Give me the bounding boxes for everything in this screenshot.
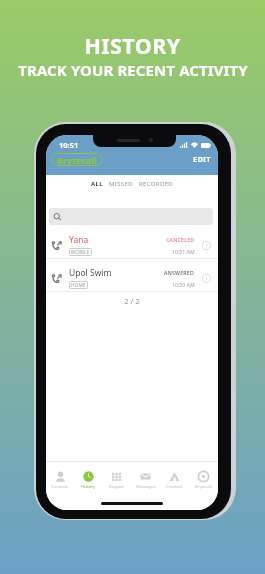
staticText: 10:50 AM <box>172 281 195 288</box>
staticText: Keypad <box>109 484 124 490</box>
staticText: ANSWERED <box>164 269 195 276</box>
staticText: Crockett <box>166 484 183 490</box>
staticText: EDIT <box>193 154 211 164</box>
staticText: Upol Swim <box>69 267 112 279</box>
staticText: CANCELED <box>166 236 195 243</box>
staticText: Messages <box>136 484 156 490</box>
button[interactable]: Call details <box>202 274 211 283</box>
button[interactable]: History <box>74 462 102 496</box>
staticText: HOME <box>71 282 86 288</box>
button[interactable]: Call details <box>202 241 211 250</box>
button[interactable]: Brytecall <box>51 153 103 166</box>
staticText: Brytecall <box>195 484 212 490</box>
staticText: History <box>81 484 96 490</box>
staticText: Brytecall <box>57 154 97 166</box>
staticText: ALL <box>91 180 103 188</box>
button[interactable]: MISSED <box>106 177 136 191</box>
staticText: RECORDED <box>139 180 174 188</box>
staticText: 2 / 2 <box>46 296 218 306</box>
staticText: Contacts <box>51 484 69 490</box>
button[interactable]: Contacts <box>46 462 74 496</box>
button[interactable]: RECORDED <box>136 177 177 191</box>
button[interactable]: Messages <box>131 462 160 496</box>
staticText: 10:51 AM <box>172 248 195 255</box>
staticText: MISSED <box>109 180 133 188</box>
button[interactable]: Upol Swim <box>46 259 218 291</box>
button[interactable]: EDIT <box>192 152 212 166</box>
button[interactable]: Crockett <box>160 462 189 496</box>
button[interactable]: Keypad <box>102 462 131 496</box>
staticText: HISTORY <box>84 31 181 60</box>
staticText: MOBILE <box>71 249 90 255</box>
staticText: TRACK YOUR RECENT ACTIVITY <box>18 60 248 80</box>
staticText: Yana <box>69 234 89 246</box>
staticText: 10:51 <box>59 140 79 150</box>
button[interactable]: Search <box>49 208 213 225</box>
button[interactable]: Brytecall <box>189 462 218 496</box>
button[interactable]: ALL <box>88 177 106 191</box>
button[interactable]: Yana <box>46 226 218 258</box>
